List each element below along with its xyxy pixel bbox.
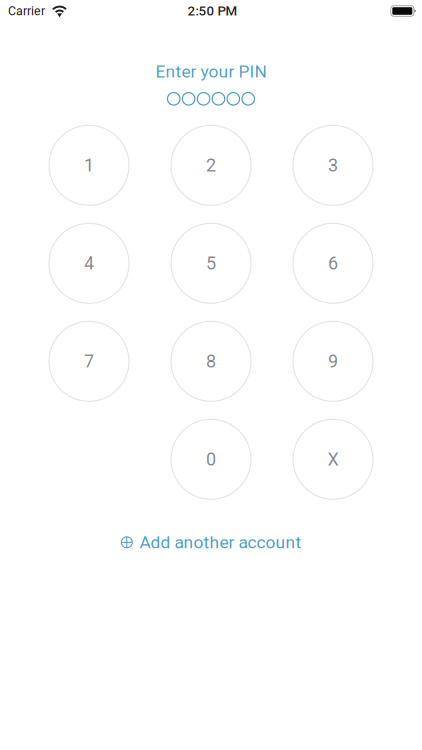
staticText: 6 xyxy=(328,253,338,274)
button[interactable]: Add another account xyxy=(121,533,301,551)
button[interactable]: X xyxy=(293,419,373,499)
staticText: 2:50 PM xyxy=(187,3,237,19)
staticText: Add another account xyxy=(139,532,301,552)
staticText: 8 xyxy=(206,351,216,372)
button[interactable]: 9 xyxy=(293,321,373,401)
button[interactable]: 1 xyxy=(49,125,129,205)
button[interactable]: 2 xyxy=(171,125,251,205)
staticText: 0 xyxy=(206,449,216,470)
button[interactable]: 5 xyxy=(171,223,251,303)
button[interactable]: 6 xyxy=(293,223,373,303)
staticText: 5 xyxy=(206,253,216,274)
staticText: 2 xyxy=(206,155,216,176)
staticText: X xyxy=(327,449,338,470)
button[interactable]: 8 xyxy=(171,321,251,401)
button[interactable]: 3 xyxy=(293,125,373,205)
button[interactable]: 0 xyxy=(171,419,251,499)
staticText: 4 xyxy=(84,253,94,274)
staticText: Enter your PIN xyxy=(155,61,266,82)
staticText: Carrier xyxy=(8,4,45,18)
staticText: 3 xyxy=(328,155,338,176)
button[interactable]: 4 xyxy=(49,223,129,303)
staticText: 1 xyxy=(84,155,94,176)
staticText: 7 xyxy=(84,351,94,372)
button[interactable]: 7 xyxy=(49,321,129,401)
staticText: 9 xyxy=(328,351,338,372)
